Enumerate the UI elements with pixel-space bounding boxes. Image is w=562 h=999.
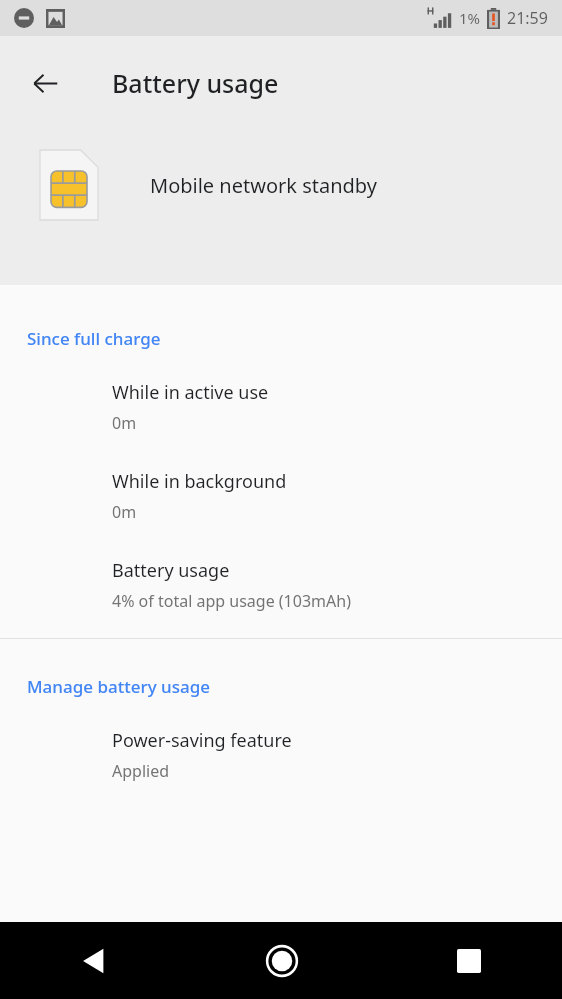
- button[interactable]: While in active use: [0, 380, 562, 434]
- button[interactable]: While in background: [0, 469, 562, 523]
- staticText: Applied: [112, 760, 170, 782]
- button[interactable]: Manage battery usage: [0, 675, 562, 698]
- staticText: While in active use: [112, 380, 269, 405]
- staticText: 0m: [112, 501, 137, 523]
- button[interactable]: Mobile network standby: [0, 130, 562, 240]
- staticText: Battery usage: [112, 558, 230, 583]
- staticText: 4% of total app usage (103mAh): [112, 590, 351, 612]
- button[interactable]: Since full charge: [0, 327, 562, 350]
- button[interactable]: Recent apps: [375, 922, 562, 999]
- staticText: Mobile network standby: [150, 172, 377, 199]
- staticText: Power-saving feature: [112, 728, 292, 753]
- button[interactable]: Battery usage: [0, 558, 562, 612]
- button[interactable]: Back: [0, 922, 188, 999]
- staticText: Since full charge: [27, 327, 161, 350]
- button[interactable]: Power-saving feature: [0, 728, 562, 782]
- staticText: Battery usage: [112, 66, 279, 100]
- staticText: 0m: [112, 412, 137, 434]
- button[interactable]: Back: [20, 58, 70, 108]
- staticText: While in background: [112, 469, 287, 494]
- button[interactable]: Home: [188, 922, 375, 999]
- staticText: 1%: [459, 8, 481, 28]
- staticText: 21:59: [507, 7, 548, 29]
- staticText: Manage battery usage: [27, 675, 211, 698]
